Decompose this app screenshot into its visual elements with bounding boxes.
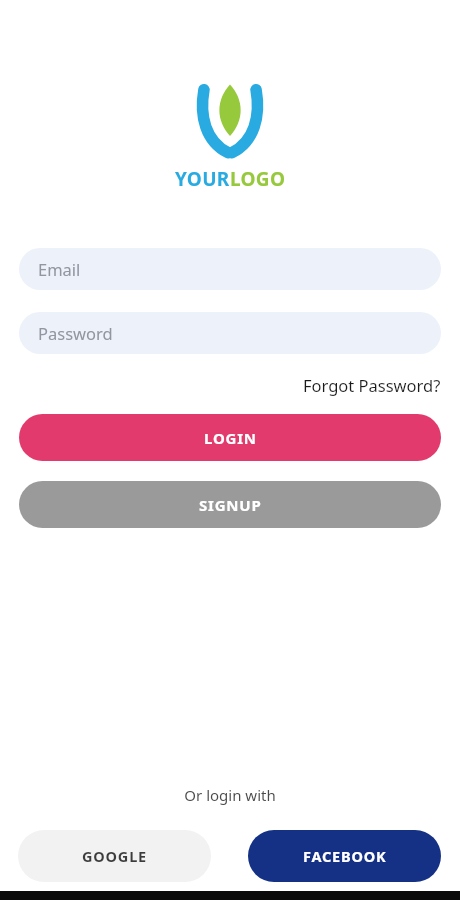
staticText: LOGIN: [204, 428, 257, 448]
staticText: SIGNUP: [199, 495, 262, 515]
staticText: Forgot Password?: [303, 374, 441, 396]
button[interactable]: Forgot Password?: [303, 374, 441, 396]
staticText: YOUR: [175, 166, 230, 192]
staticText: FACEBOOK: [303, 846, 387, 866]
button[interactable]: FACEBOOK: [248, 830, 441, 882]
staticText: Or login with: [0, 785, 460, 805]
button[interactable]: GOOGLE: [18, 830, 211, 882]
button[interactable]: SIGNUP: [19, 481, 441, 528]
staticText: Email: [38, 258, 81, 280]
button[interactable]: Email: [19, 248, 441, 290]
button[interactable]: LOGIN: [19, 414, 441, 461]
staticText: Password: [38, 322, 113, 344]
staticText: GOOGLE: [82, 846, 147, 866]
button[interactable]: Password: [19, 312, 441, 354]
staticText: LOGO: [230, 166, 286, 192]
